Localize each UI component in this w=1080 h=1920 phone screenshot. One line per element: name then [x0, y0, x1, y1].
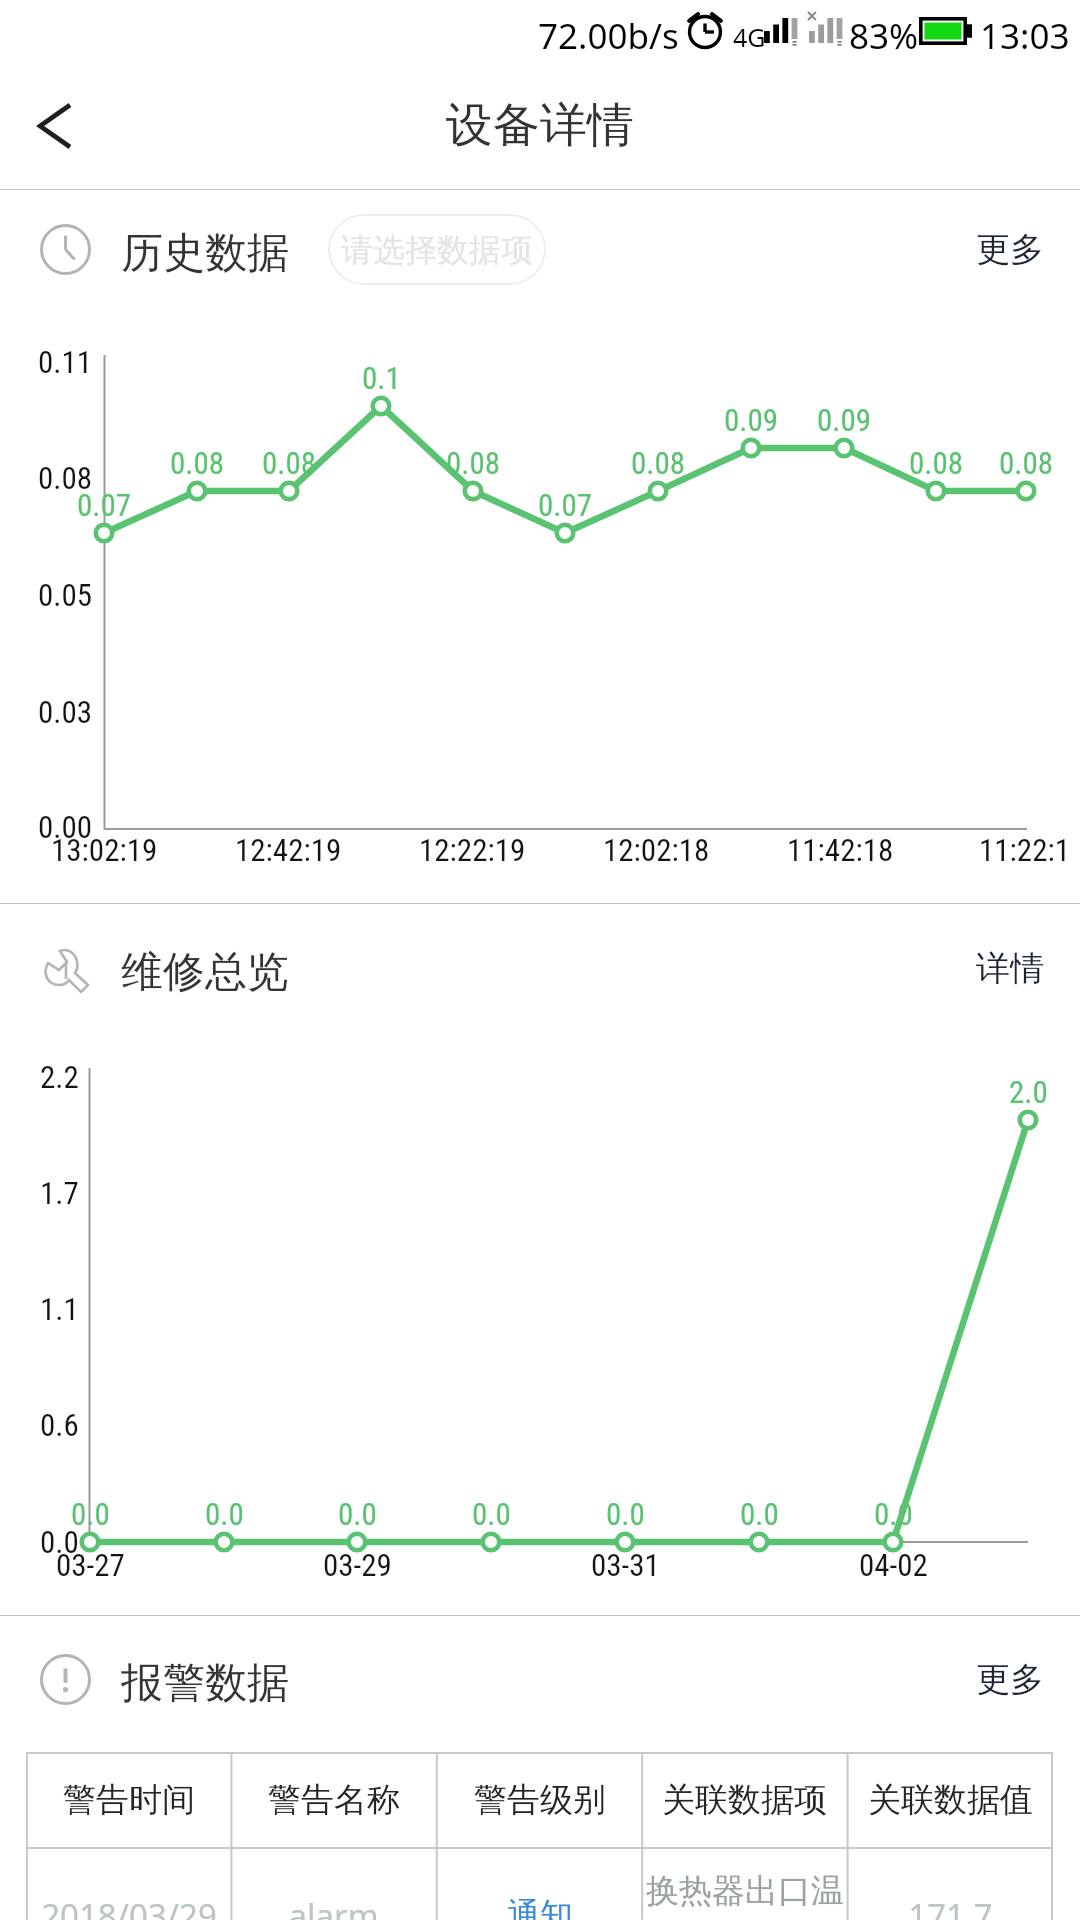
staticText: 03-27: [56, 1547, 125, 1583]
button[interactable]: 请选择数据项: [328, 214, 546, 285]
staticText: 0.0: [472, 1496, 511, 1532]
staticText: 03-31: [591, 1547, 660, 1583]
staticText: 关联数据值: [868, 1779, 1033, 1821]
staticText: 0.6: [40, 1407, 79, 1443]
staticText: 维修总览: [121, 946, 289, 999]
staticText: 0.03: [38, 694, 93, 730]
staticText: 0.07: [538, 487, 593, 523]
button[interactable]: 详情: [932, 923, 1080, 1014]
staticText: 换热器出口温: [646, 1870, 844, 1912]
staticText: 13:02:19: [51, 832, 158, 868]
staticText: 详情: [976, 947, 1044, 990]
button[interactable]: 更多: [932, 1634, 1080, 1725]
staticText: alarm: [288, 1893, 379, 1920]
staticText: 0.09: [724, 402, 779, 438]
staticText: 0.08: [446, 445, 501, 481]
staticText: 12:02:18: [603, 832, 710, 868]
staticText: 2018/03/29: [41, 1893, 217, 1920]
staticText: 0.08: [38, 460, 93, 496]
staticText: 1.7: [40, 1175, 79, 1211]
staticText: 0.0: [71, 1496, 110, 1532]
staticText: 0.0: [740, 1496, 779, 1532]
staticText: 设备详情: [446, 96, 634, 155]
staticText: 83%: [849, 12, 919, 60]
button[interactable]: 更多: [932, 204, 1080, 295]
staticText: 12:42:19: [235, 832, 342, 868]
staticText: 4G: [733, 20, 766, 54]
staticText: 171.7: [908, 1893, 993, 1920]
staticText: 03-29: [323, 1547, 392, 1583]
staticText: 0.08: [262, 445, 317, 481]
staticText: 0.08: [999, 445, 1054, 481]
staticText: 警告名称: [268, 1779, 400, 1821]
staticText: 72.00b/s: [538, 12, 679, 60]
staticText: 请选择数据项: [341, 230, 533, 270]
staticText: 0.08: [909, 445, 964, 481]
staticText: 11:22:1: [979, 832, 1070, 868]
staticText: 0.0: [606, 1496, 645, 1532]
staticText: 0.0: [874, 1496, 913, 1532]
staticText: 通知: [507, 1894, 573, 1920]
staticText: 0.07: [77, 487, 132, 523]
staticText: 04-02: [859, 1547, 928, 1583]
staticText: 0.11: [38, 344, 93, 380]
staticText: 13:03: [980, 12, 1070, 60]
staticText: 1.1: [40, 1291, 79, 1327]
staticText: 关联数据项: [662, 1779, 827, 1821]
staticText: 0.08: [631, 445, 686, 481]
staticText: 警告时间: [63, 1779, 195, 1821]
staticText: 0.0: [338, 1496, 377, 1532]
button[interactable]: Back: [0, 62, 110, 189]
staticText: 警告级别: [474, 1779, 606, 1821]
staticText: 2.2: [40, 1059, 79, 1095]
staticText: 历史数据: [121, 227, 289, 280]
staticText: 更多: [976, 228, 1044, 271]
staticText: 12:22:19: [419, 832, 526, 868]
staticText: 0.1: [362, 360, 401, 396]
staticText: 0.08: [170, 445, 225, 481]
staticText: 2.0: [1009, 1074, 1048, 1110]
staticText: 更多: [976, 1658, 1044, 1701]
staticText: 0.0: [205, 1496, 244, 1532]
button[interactable]: 2018/03/29: [26, 1848, 1053, 1920]
staticText: 报警数据: [121, 1657, 289, 1710]
staticText: 0.0: [40, 1524, 79, 1560]
staticText: 0.00: [38, 809, 93, 845]
staticText: 11:42:18: [787, 832, 894, 868]
staticText: 0.05: [38, 577, 93, 613]
staticText: 0.09: [817, 402, 872, 438]
